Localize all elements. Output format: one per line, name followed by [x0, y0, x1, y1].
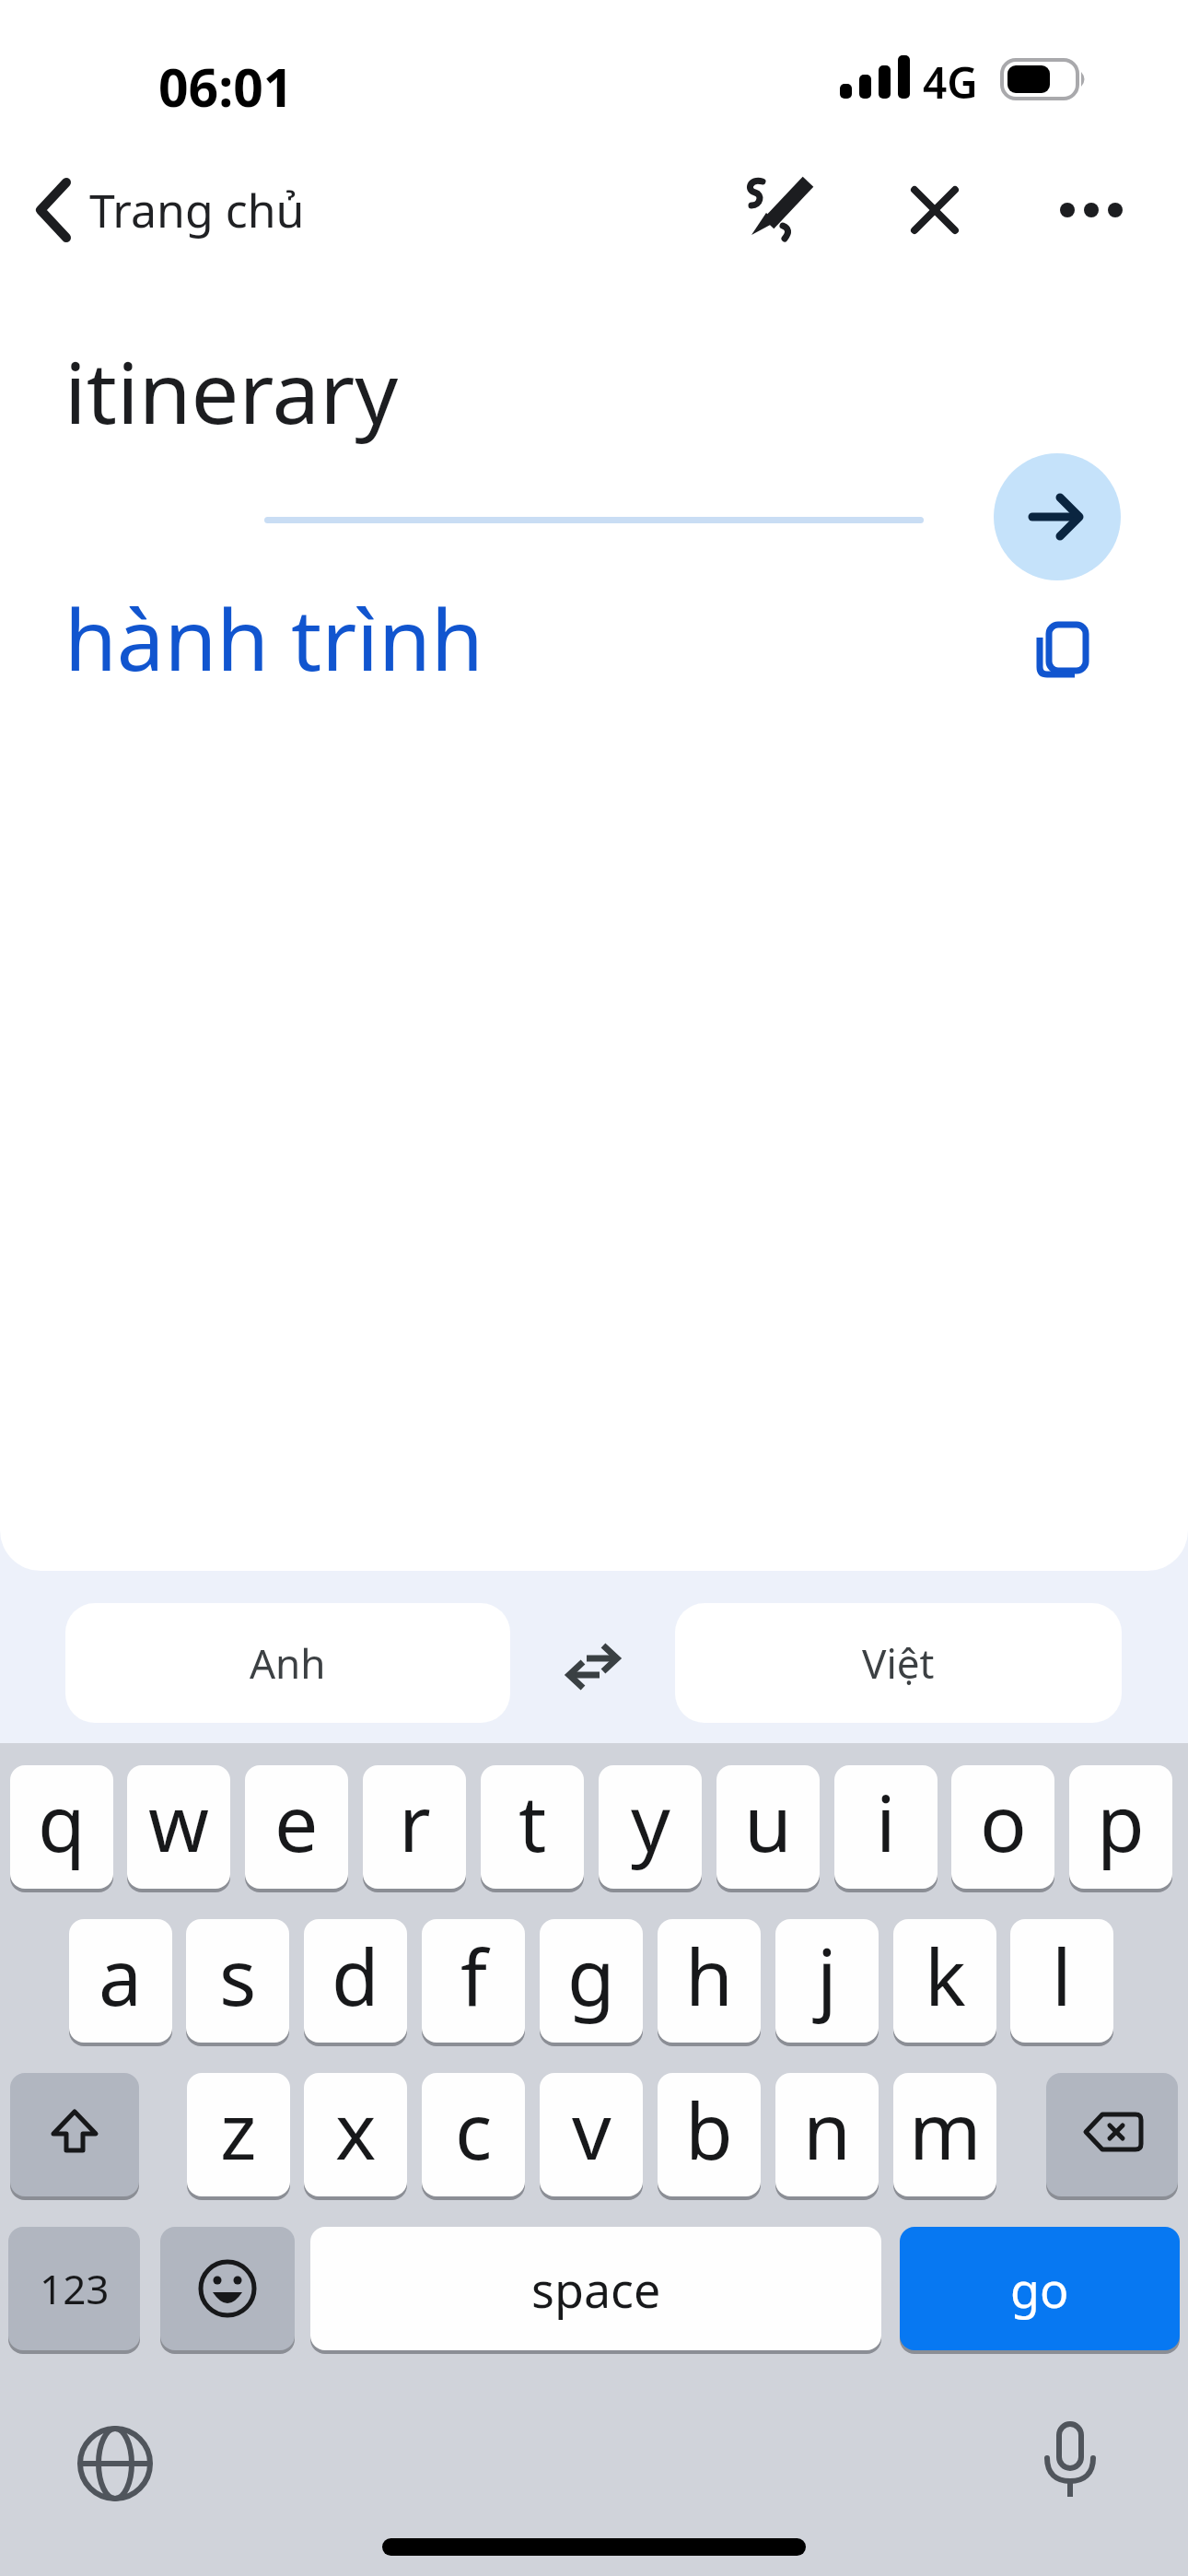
staticText: r	[399, 1769, 431, 1874]
button[interactable]: x	[304, 2073, 407, 2196]
button[interactable]: space	[310, 2227, 881, 2350]
button[interactable]: g	[540, 1919, 643, 2043]
button[interactable]: q	[10, 1765, 113, 1889]
staticText: f	[460, 1923, 487, 2028]
staticText: Việt	[862, 1635, 935, 1691]
staticText: go	[1010, 2256, 1069, 2322]
button[interactable]	[994, 453, 1121, 580]
button[interactable]: j	[775, 1919, 879, 2043]
button[interactable]: o	[951, 1765, 1054, 1889]
staticText: o	[980, 1769, 1027, 1874]
button[interactable]: k	[893, 1919, 996, 2043]
staticText: x	[335, 2077, 377, 2182]
staticText: d	[332, 1923, 379, 2028]
button[interactable]: e	[245, 1765, 348, 1889]
button[interactable]: c	[422, 2073, 525, 2196]
staticText: Anh	[250, 1635, 326, 1691]
staticText: b	[685, 2077, 733, 2182]
staticText: h	[685, 1923, 733, 2028]
button[interactable]	[10, 2073, 139, 2196]
staticText: k	[925, 1923, 966, 2028]
button[interactable]	[1050, 175, 1133, 245]
button[interactable]: v	[540, 2073, 643, 2196]
staticText: s	[219, 1923, 257, 2028]
button[interactable]: t	[481, 1765, 584, 1889]
button[interactable]: z	[187, 2073, 290, 2196]
button[interactable]: h	[658, 1919, 761, 2043]
button[interactable]: Anh	[65, 1603, 510, 1723]
button[interactable]	[160, 2227, 295, 2350]
staticText: g	[567, 1923, 615, 2028]
staticText: hành trình	[64, 580, 483, 693]
button[interactable]: i	[834, 1765, 938, 1889]
button[interactable]: 123	[8, 2227, 140, 2350]
staticText: 4G	[923, 53, 978, 105]
button[interactable]: n	[775, 2073, 879, 2196]
button[interactable]	[898, 175, 972, 245]
button[interactable]: Trang chủ	[28, 170, 332, 250]
staticText: space	[531, 2256, 661, 2322]
staticText: w	[148, 1769, 210, 1874]
button[interactable]: u	[716, 1765, 820, 1889]
staticText: c	[455, 2077, 493, 2182]
button[interactable]: b	[658, 2073, 761, 2196]
button[interactable]: d	[304, 1919, 407, 2043]
staticText: y	[631, 1769, 670, 1874]
button[interactable]: y	[599, 1765, 702, 1889]
staticText: q	[38, 1769, 86, 1874]
staticText: t	[518, 1769, 547, 1874]
staticText: itinerary	[64, 334, 399, 444]
staticText: Trang chủ	[89, 179, 305, 241]
staticText: u	[744, 1769, 792, 1874]
staticText: l	[1052, 1923, 1072, 2028]
button[interactable]: m	[893, 2073, 996, 2196]
staticText: a	[99, 1923, 143, 2028]
staticText: 06:01	[158, 51, 294, 108]
button[interactable]: go	[900, 2227, 1180, 2350]
button[interactable]	[69, 2418, 161, 2510]
button[interactable]: f	[422, 1919, 525, 2043]
staticText: m	[909, 2077, 982, 2182]
button[interactable]	[1024, 2418, 1116, 2510]
staticText: 123	[40, 2261, 110, 2316]
button[interactable]	[1019, 608, 1107, 697]
button[interactable]: Việt	[675, 1603, 1122, 1723]
button[interactable]: p	[1069, 1765, 1172, 1889]
staticText: i	[876, 1769, 896, 1874]
button[interactable]	[1046, 2073, 1178, 2196]
button[interactable]: l	[1010, 1919, 1113, 2043]
staticText: p	[1097, 1769, 1145, 1874]
staticText: n	[803, 2077, 851, 2182]
button[interactable]	[548, 1626, 640, 1700]
button[interactable]: s	[186, 1919, 289, 2043]
staticText: e	[274, 1769, 319, 1874]
button[interactable]: r	[363, 1765, 466, 1889]
button[interactable]: a	[69, 1919, 172, 2043]
staticText: z	[220, 2077, 257, 2182]
button[interactable]	[737, 170, 820, 250]
staticText: j	[817, 1923, 837, 2028]
staticText: v	[572, 2077, 611, 2182]
button[interactable]: w	[127, 1765, 230, 1889]
